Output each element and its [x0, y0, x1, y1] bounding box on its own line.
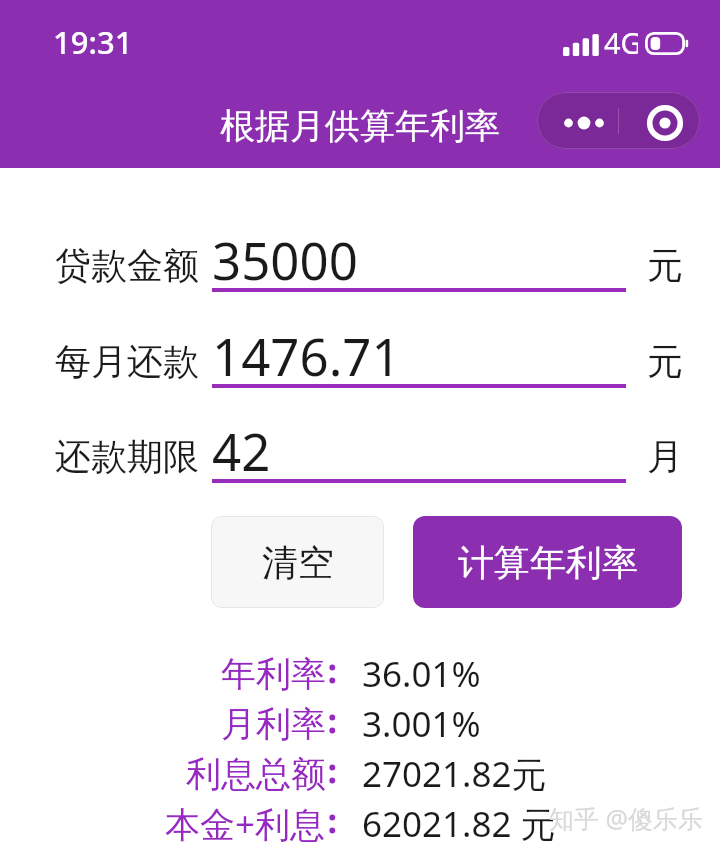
staticText: 月利率: [221, 702, 326, 746]
staticText: 本金+利息: [165, 800, 326, 848]
button[interactable]: More options: [537, 92, 618, 149]
staticText: 19:31: [53, 21, 133, 63]
staticText: 4G: [604, 23, 638, 62]
staticText: 36.01%: [362, 650, 481, 698]
staticText: 清空: [262, 540, 334, 585]
staticText: 42: [212, 416, 271, 472]
staticText: 62021.82 元: [362, 800, 556, 848]
staticText: 35000: [212, 225, 358, 281]
staticText: 1476.71: [212, 321, 401, 377]
staticText: 3.001%: [362, 700, 481, 748]
staticText: 根据月供算年利率: [220, 104, 500, 148]
staticText: 元: [647, 339, 683, 384]
button[interactable]: 计算年利率: [413, 516, 682, 608]
staticText: 元: [647, 243, 683, 288]
staticText: 贷款金额: [55, 243, 199, 288]
staticText: 知乎 @傻乐乐: [549, 801, 703, 835]
staticText: 月: [647, 434, 683, 479]
button[interactable]: 清空: [211, 516, 384, 608]
staticText: 计算年利率: [458, 540, 638, 585]
staticText: 利息总额: [186, 752, 326, 796]
staticText: 年利率: [221, 652, 326, 696]
button[interactable]: Close mini program: [619, 92, 700, 149]
staticText: 27021.82元: [362, 750, 547, 798]
staticText: 还款期限: [55, 434, 199, 479]
staticText: 每月还款: [55, 339, 199, 384]
